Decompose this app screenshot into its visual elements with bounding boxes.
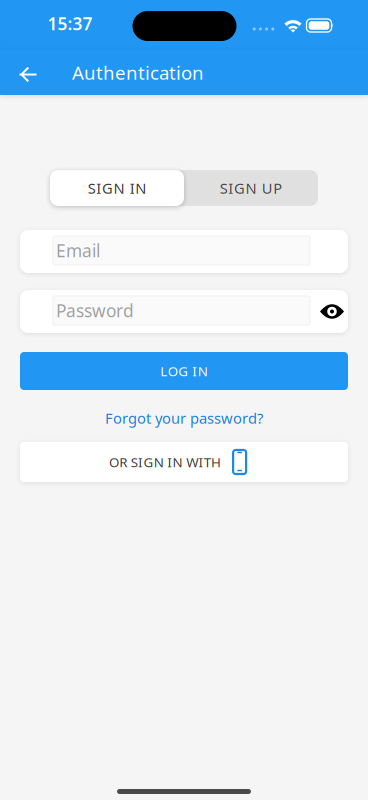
staticText: SIGN IN xyxy=(88,178,146,198)
button[interactable] xyxy=(4,52,52,97)
button[interactable]: Forgot your password? xyxy=(105,403,263,433)
staticText: Authentication xyxy=(72,60,204,85)
staticText: OR SIGN IN WITH xyxy=(109,453,221,471)
button[interactable]: SIGN IN xyxy=(50,170,184,206)
button[interactable]: OR SIGN IN WITH xyxy=(20,442,348,482)
button[interactable]: LOG IN xyxy=(20,352,348,390)
staticText: Forgot your password? xyxy=(105,408,263,428)
staticText: Email xyxy=(56,239,100,262)
staticText: Password xyxy=(56,299,134,322)
button[interactable]: SIGN UP xyxy=(184,170,318,206)
staticText: 15:37 xyxy=(47,12,92,35)
staticText: LOG IN xyxy=(160,362,208,380)
staticText: SIGN UP xyxy=(220,178,282,198)
button[interactable] xyxy=(314,291,350,331)
